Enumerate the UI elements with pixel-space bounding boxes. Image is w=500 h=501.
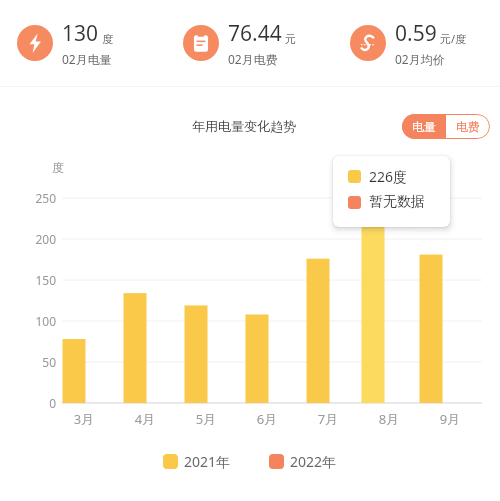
other: 02月均价 [350, 25, 386, 61]
staticText: 元/度 [440, 31, 467, 46]
staticText: 年用电量变化趋势 [192, 118, 296, 134]
staticText: 02月电量 [62, 51, 112, 67]
staticText: 02月电费 [228, 51, 278, 67]
button[interactable]: 2021年 [163, 452, 231, 471]
staticText: 0 [18, 395, 56, 411]
staticText: 130 [62, 19, 99, 48]
staticText: 226度 [369, 167, 408, 186]
staticText: 3月 [64, 410, 104, 428]
staticText: 电费 [456, 119, 480, 134]
staticText: 4月 [125, 410, 165, 428]
button[interactable]: 02月均价 [333, 0, 500, 86]
staticText: 250 [18, 190, 56, 206]
staticText: 暂无数据 [369, 193, 425, 211]
button[interactable]: 电费 [446, 114, 490, 139]
button[interactable]: 2022年 [269, 452, 337, 471]
staticText: 度 [102, 32, 113, 46]
staticText: 200 [18, 231, 56, 247]
staticText: 2022年 [290, 452, 337, 471]
button[interactable]: 02月电费 [166, 0, 333, 86]
staticText: 50 [18, 354, 56, 370]
staticText: 元 [285, 32, 296, 46]
staticText: 76.44 [228, 19, 282, 48]
staticText: 6月 [247, 410, 287, 428]
staticText: 8月 [369, 410, 409, 428]
staticText: 5月 [186, 410, 226, 428]
button[interactable]: 电量 [402, 114, 446, 139]
other: 02月电费 [183, 25, 219, 61]
staticText: 9月 [430, 410, 470, 428]
staticText: 度 [52, 160, 64, 175]
staticText: 100 [18, 313, 56, 329]
button[interactable]: 02月电量 [0, 0, 166, 86]
staticText: 2021年 [184, 452, 231, 471]
staticText: 02月均价 [395, 51, 445, 67]
other: 02月电量 [17, 25, 53, 61]
staticText: 150 [18, 272, 56, 288]
staticText: 电量 [412, 119, 436, 134]
staticText: 0.59 [395, 19, 437, 48]
staticText: 7月 [308, 410, 348, 428]
